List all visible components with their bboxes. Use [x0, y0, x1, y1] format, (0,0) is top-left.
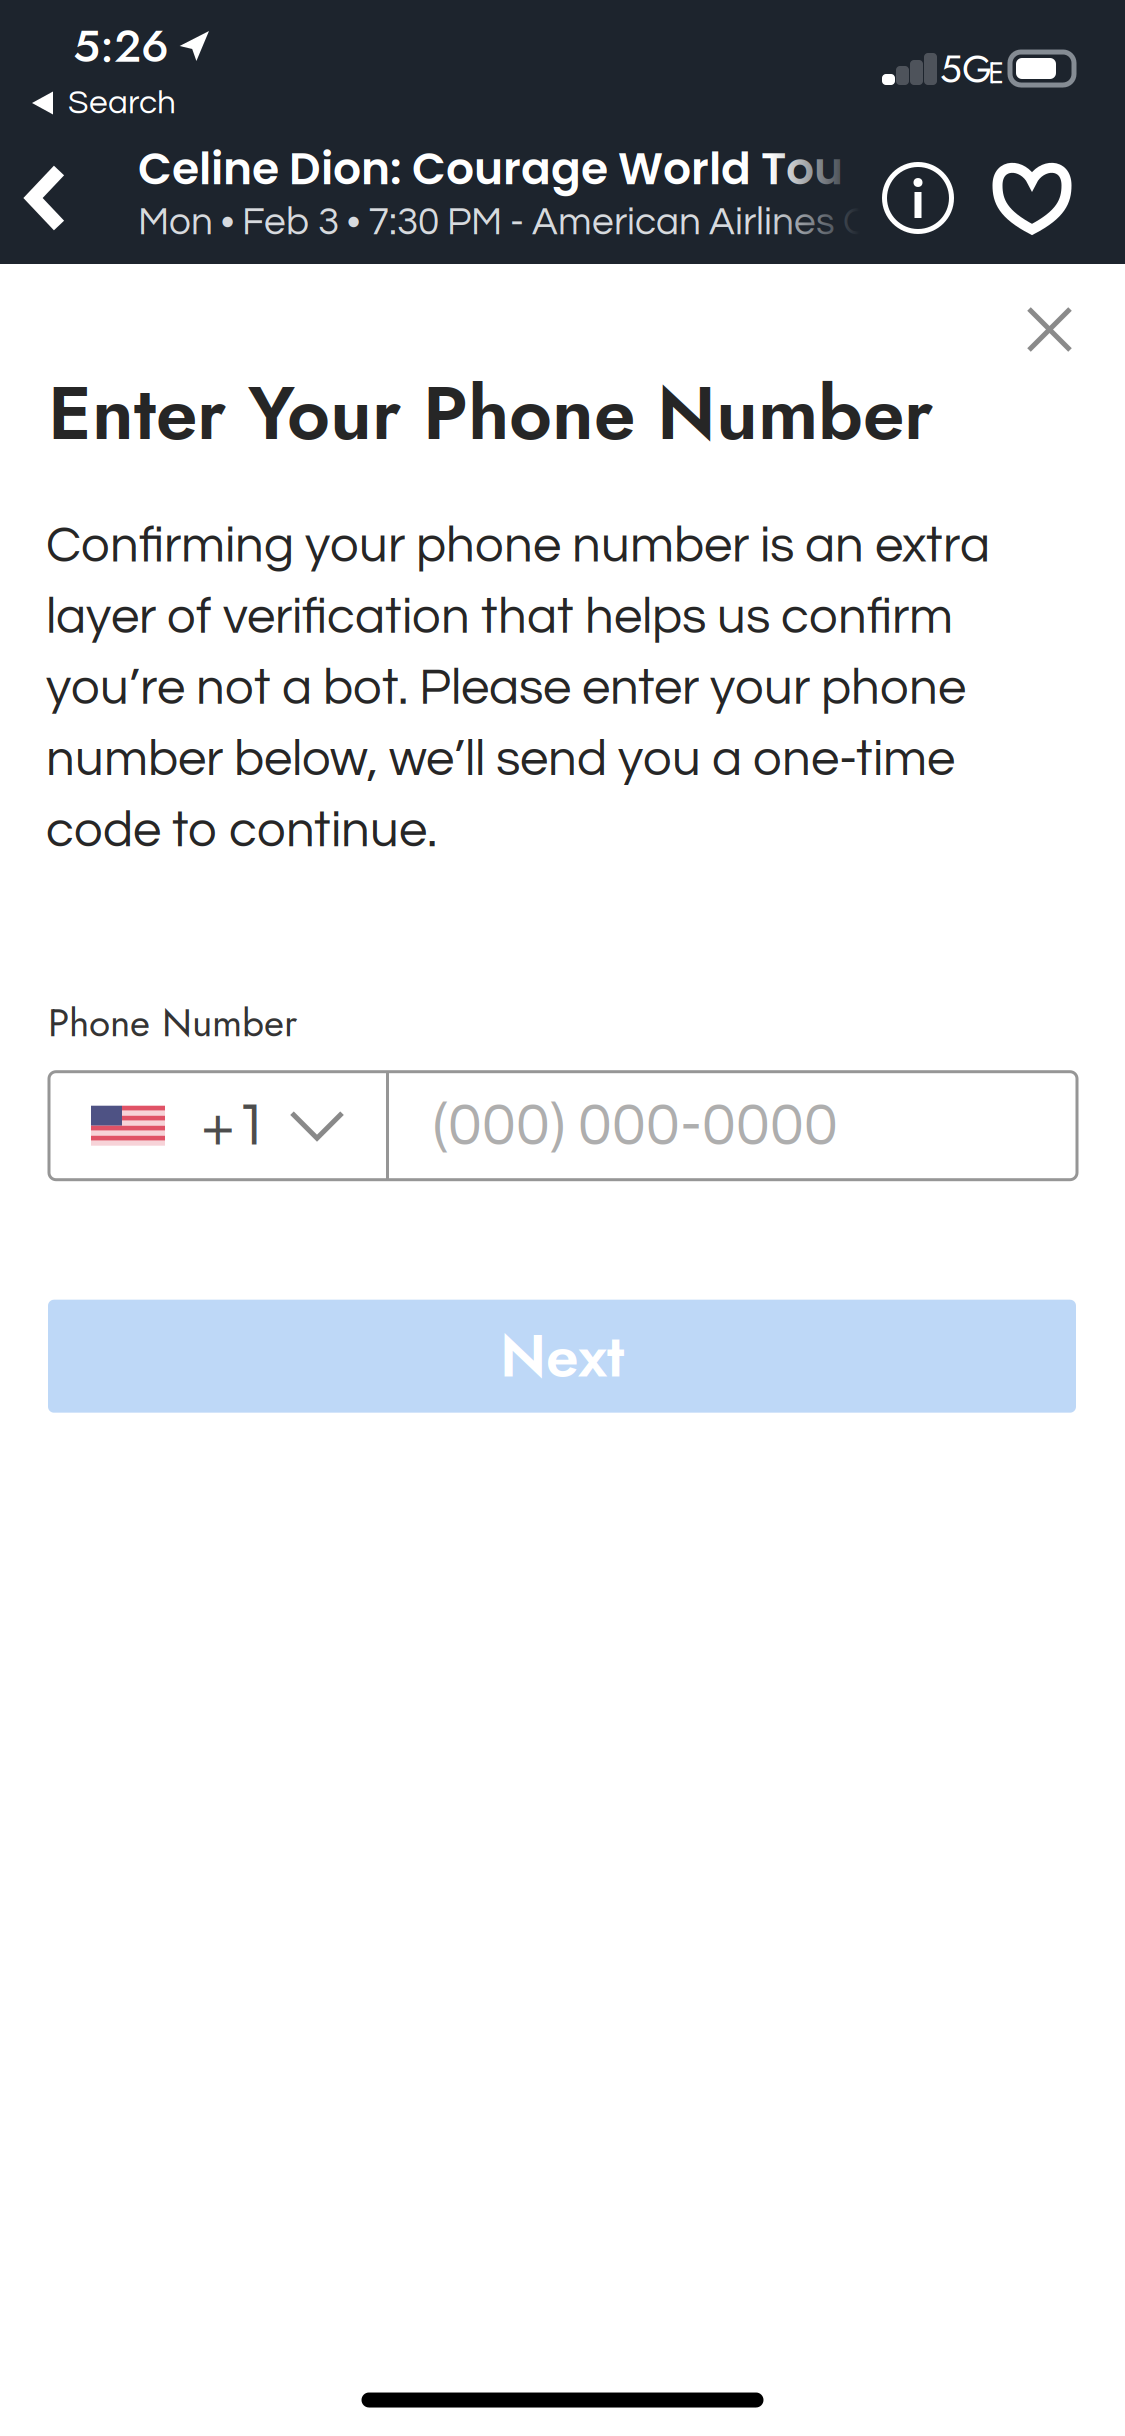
button[interactable]: Event information [858, 132, 978, 264]
staticText: 5:26 [73, 13, 169, 79]
staticText: Mon • Feb 3 • 7:30 PM - American Airline… [138, 203, 870, 242]
staticText: 5G [940, 41, 992, 97]
staticText: Phone Number [48, 995, 297, 1051]
button[interactable]: Close [1007, 287, 1092, 372]
staticText: (000) 000-0000 [433, 1094, 838, 1157]
staticText: Enter Your Phone Number [48, 359, 933, 467]
staticText: Celine Dion: Courage World Tou [138, 138, 843, 200]
button[interactable]: Select country code [49, 1072, 386, 1180]
staticText: Next [500, 1314, 624, 1399]
staticText: +1 [201, 1094, 269, 1157]
button[interactable]: Add to favorites [972, 132, 1092, 264]
button[interactable]: Back [0, 132, 101, 264]
staticText: E [988, 52, 1004, 94]
staticText: Confirming your phone number is an extra… [46, 520, 990, 857]
button[interactable]: Next [48, 1300, 1076, 1413]
button[interactable]: Phone number input [389, 1072, 1077, 1180]
staticText: Search [68, 86, 176, 120]
